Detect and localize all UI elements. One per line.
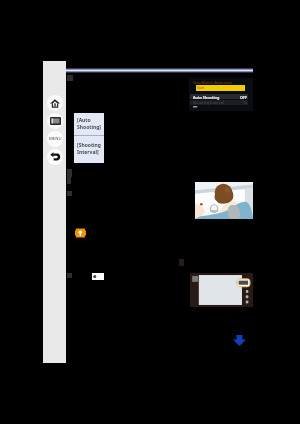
button[interactable]: Contents [47,113,63,129]
staticText: Shooting Interval [193,100,224,105]
staticText: 1s [243,100,247,105]
button[interactable]: [Auto Shooting] [74,113,104,163]
button[interactable]: Home [47,95,63,111]
staticText: [Shooting Interval] [77,142,101,156]
staticText: OFF [240,95,247,100]
staticText: Stop Motion Animation [193,80,233,85]
staticText: Auto Shooting [193,95,220,100]
staticText: MENU [49,136,62,142]
button[interactable]: Back [47,149,63,165]
staticText: [Auto Shooting] [77,117,101,131]
button[interactable]: Menu [47,131,63,147]
staticText: Start [197,86,205,90]
